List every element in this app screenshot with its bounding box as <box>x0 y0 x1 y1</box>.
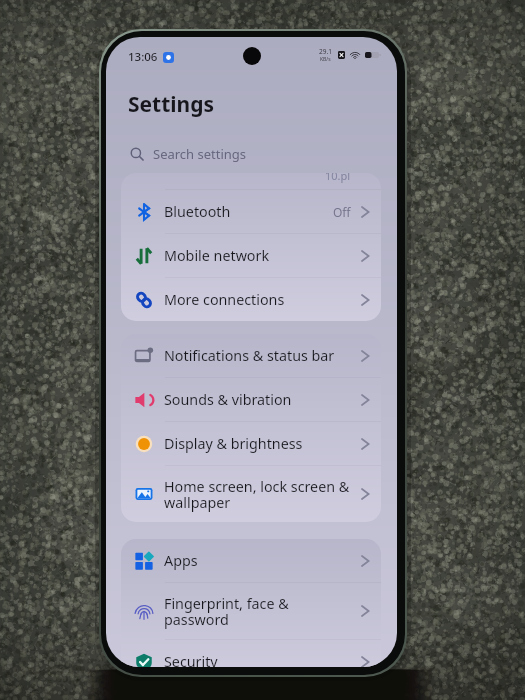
staticText: 13:06 <box>128 49 158 65</box>
staticText: Off <box>333 204 351 220</box>
button[interactable]: Mobile network <box>121 234 381 277</box>
button[interactable]: Display & brightness <box>121 422 381 465</box>
staticText: Search settings <box>153 145 247 163</box>
staticText: Sounds & vibration <box>164 390 361 409</box>
button[interactable]: Apps <box>121 539 381 582</box>
button[interactable]: More connections <box>121 278 381 321</box>
button[interactable]: Search settings <box>106 139 397 169</box>
staticText: Settings <box>128 90 215 119</box>
staticText: Bluetooth <box>164 202 333 221</box>
button[interactable]: Fingerprint, face & password <box>121 583 381 639</box>
button[interactable]: Notifications & status bar <box>121 334 381 377</box>
staticText: Fingerprint, face & password <box>164 594 361 629</box>
staticText: Mobile network <box>164 246 361 265</box>
staticText: Apps <box>164 551 361 570</box>
staticText: Home screen, lock screen & wallpaper <box>164 477 361 512</box>
staticText: 10.pl <box>325 173 351 183</box>
button[interactable]: Home screen, lock screen & wallpaper <box>121 466 381 522</box>
staticText: More connections <box>164 290 361 309</box>
staticText: Display & brightness <box>164 434 361 453</box>
button[interactable]: Security <box>121 640 381 667</box>
staticText: KB/s <box>320 56 331 63</box>
button[interactable]: Bluetooth <box>121 190 381 233</box>
staticText: Notifications & status bar <box>164 346 361 365</box>
staticText: Security <box>164 652 361 667</box>
staticText: 29.1 <box>319 47 332 56</box>
button[interactable]: Sounds & vibration <box>121 378 381 421</box>
